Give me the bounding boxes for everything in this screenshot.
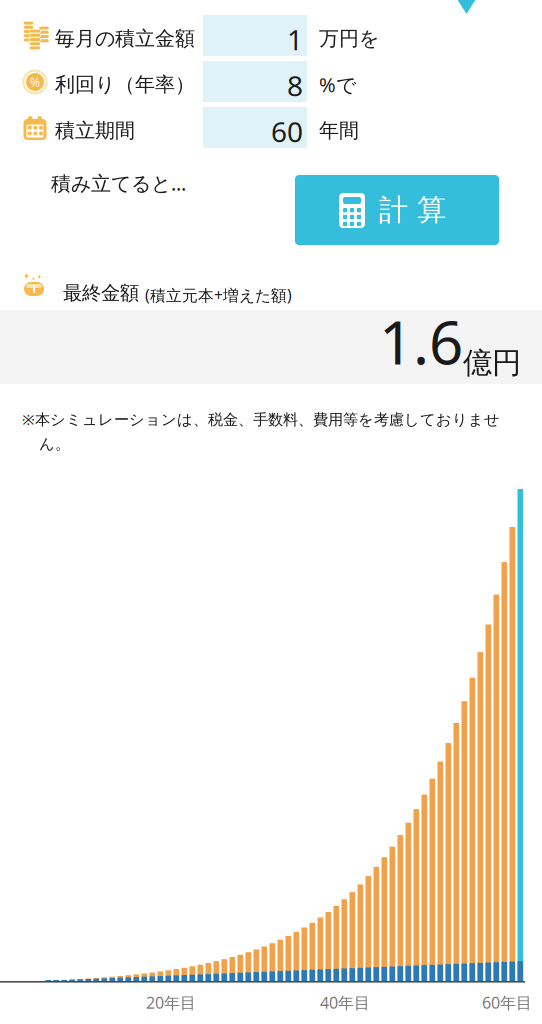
- staticText: 1: [287, 21, 303, 58]
- staticText: 毎月の積立金額: [55, 26, 195, 51]
- staticText: ん。: [39, 434, 70, 453]
- staticText: 万円を: [319, 26, 379, 51]
- staticText: 8: [287, 67, 303, 104]
- staticText: 20年目: [146, 992, 196, 1013]
- staticText: 億円: [463, 345, 521, 381]
- staticText: 1.6: [379, 301, 463, 381]
- staticText: ※本シミュレーションは、税金、手数料、費用等を考慮しておりませ: [22, 409, 500, 429]
- staticText: 60: [271, 113, 303, 150]
- staticText: (積立元本+増えた額): [145, 284, 292, 306]
- staticText: 利回り（年率）: [55, 72, 195, 97]
- staticText: %で: [319, 71, 356, 98]
- staticText: %: [30, 74, 40, 90]
- staticText: 積立期間: [55, 118, 135, 143]
- staticText: 最終金額: [63, 281, 139, 305]
- staticText: 60年目: [482, 992, 532, 1013]
- button[interactable]: 計 算: [295, 175, 499, 245]
- staticText: 積み立てると...: [51, 170, 186, 196]
- staticText: 40年目: [320, 992, 370, 1013]
- staticText: 計 算: [379, 192, 446, 228]
- staticText: 年間: [319, 118, 359, 143]
